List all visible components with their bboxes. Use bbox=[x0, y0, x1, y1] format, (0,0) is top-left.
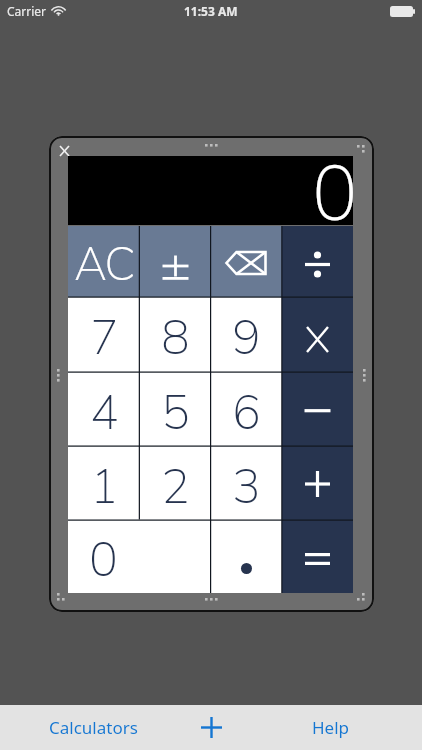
staticText: 11:53 AM bbox=[184, 3, 238, 19]
button[interactable]: 9 bbox=[211, 297, 282, 372]
button[interactable]: 8 bbox=[140, 297, 211, 372]
staticText: Carrier bbox=[7, 3, 47, 19]
button[interactable]: Plus minus bbox=[140, 226, 211, 297]
button[interactable]: 2 bbox=[140, 446, 211, 520]
button[interactable]: 5 bbox=[140, 372, 211, 446]
button[interactable]: Backspace bbox=[211, 226, 282, 297]
button[interactable]: Add bbox=[189, 705, 233, 750]
button[interactable]: Plus bbox=[282, 446, 353, 520]
button[interactable]: All clear bbox=[68, 226, 140, 297]
staticText: 9 bbox=[232, 305, 261, 370]
button[interactable]: Divide bbox=[282, 226, 353, 297]
staticText: 4 bbox=[90, 380, 119, 445]
button[interactable]: 6 bbox=[211, 372, 282, 446]
button[interactable]: Decimal point bbox=[211, 520, 282, 593]
button[interactable]: 1 bbox=[68, 446, 140, 520]
button[interactable]: Calculators bbox=[38, 705, 148, 750]
staticText: 3 bbox=[232, 454, 261, 519]
staticText: 5 bbox=[161, 380, 190, 445]
staticText: 1 bbox=[90, 454, 119, 519]
button[interactable]: Equals bbox=[282, 520, 353, 593]
button[interactable]: Minus bbox=[282, 372, 353, 446]
button[interactable]: Help bbox=[291, 705, 371, 750]
staticText: AC bbox=[74, 233, 134, 296]
staticText: 6 bbox=[232, 380, 261, 445]
button[interactable]: Close bbox=[52, 139, 76, 163]
staticText: 7 bbox=[90, 305, 119, 370]
staticText: 2 bbox=[161, 454, 190, 519]
staticText: 0 bbox=[89, 527, 118, 592]
staticText: Help bbox=[312, 716, 350, 739]
button[interactable]: 7 bbox=[68, 297, 140, 372]
staticText: Calculators bbox=[49, 716, 138, 739]
button[interactable]: Zero bbox=[68, 520, 211, 593]
staticText: 0 bbox=[312, 156, 353, 225]
staticText: 8 bbox=[161, 305, 190, 370]
button[interactable]: 4 bbox=[68, 372, 140, 446]
button[interactable]: Multiply bbox=[282, 297, 353, 372]
button[interactable]: 3 bbox=[211, 446, 282, 520]
